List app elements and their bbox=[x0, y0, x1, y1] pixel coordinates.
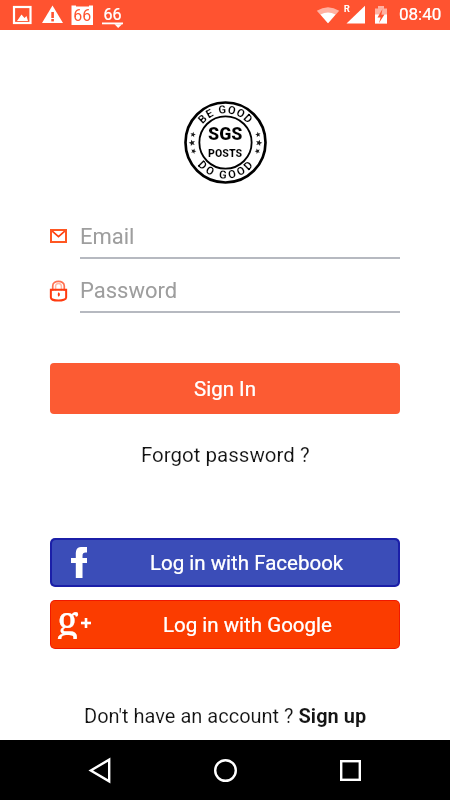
button[interactable]: Don't have an account ? Sign up bbox=[0, 700, 450, 730]
staticText: Password bbox=[80, 278, 178, 304]
button[interactable]: Home bbox=[201, 746, 249, 794]
staticText: Log in with Facebook bbox=[150, 551, 344, 575]
button[interactable]: Log in with Google bbox=[51, 601, 399, 648]
button[interactable]: Forgot password ? bbox=[125, 440, 325, 470]
button[interactable]: Recents bbox=[326, 746, 374, 794]
staticText: Forgot password ? bbox=[141, 443, 310, 467]
staticText: Email bbox=[80, 224, 135, 250]
staticText: 08:40 bbox=[399, 4, 442, 24]
staticText: Sign In bbox=[194, 377, 256, 401]
staticText: Log in with Google bbox=[163, 613, 332, 637]
staticText: Don't have an account ? Sign up bbox=[84, 704, 367, 727]
staticText: g bbox=[57, 601, 79, 639]
button[interactable]: Back bbox=[76, 746, 124, 794]
button[interactable]: Sign In bbox=[50, 363, 400, 414]
button[interactable]: Log in with Facebook bbox=[52, 540, 398, 585]
